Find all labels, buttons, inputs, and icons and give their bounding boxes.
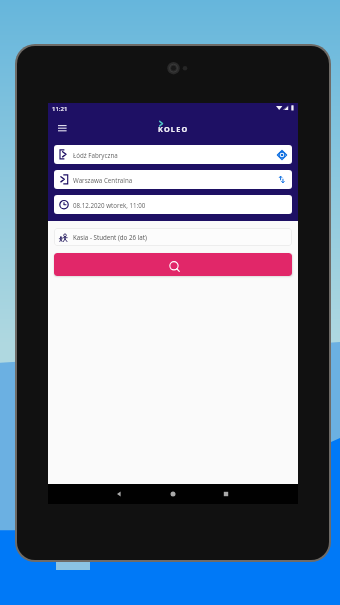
button[interactable]: Kasia - Student (do 26 lat) <box>54 228 292 246</box>
staticText: KOLEO <box>158 124 189 134</box>
button[interactable]: Search connections <box>54 253 292 276</box>
staticText: 08.12.2020 wtorek, 11:00 <box>73 201 146 209</box>
staticText: Łódź Fabryczna <box>73 151 118 159</box>
button[interactable]: Use my location <box>272 145 291 164</box>
staticText: 11:21 <box>52 105 68 113</box>
button[interactable]: Recent apps <box>213 484 239 504</box>
staticText: Warszawa Centralna <box>73 176 133 184</box>
button[interactable]: Home <box>160 484 186 504</box>
staticText: Kasia - Student (do 26 lat) <box>73 233 147 241</box>
button[interactable]: Warszawa Centralna <box>54 170 292 189</box>
button[interactable]: Swap stations <box>272 170 291 189</box>
button[interactable]: Back <box>106 484 132 504</box>
button[interactable]: Łódź Fabryczna <box>54 145 292 164</box>
button[interactable]: Menu <box>53 119 71 137</box>
button[interactable]: 08.12.2020 wtorek, 11:00 <box>54 195 292 214</box>
